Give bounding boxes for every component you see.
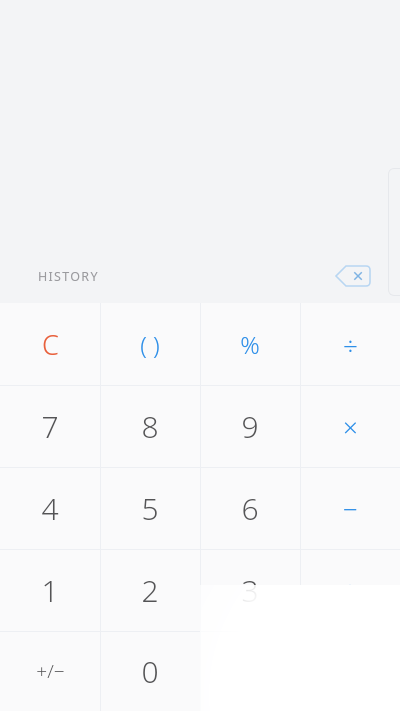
staticText: 0	[141, 651, 159, 692]
button[interactable]: 1	[0, 549, 100, 631]
button[interactable]: ×	[300, 385, 400, 467]
staticText: ( )	[140, 328, 160, 361]
button[interactable]: +	[300, 549, 400, 631]
button[interactable]: 3	[200, 549, 300, 631]
staticText: ×	[343, 409, 358, 444]
staticText: 4	[41, 488, 59, 529]
button[interactable]: 2	[100, 549, 200, 631]
button[interactable]: +/−	[0, 631, 100, 711]
button[interactable]: −	[300, 467, 400, 549]
staticText: 5	[141, 488, 159, 529]
button[interactable]: 5	[100, 467, 200, 549]
staticText: 2	[141, 570, 159, 611]
button[interactable]: 6	[200, 467, 300, 549]
button[interactable]: ( )	[100, 303, 200, 385]
button[interactable]: 4	[0, 467, 100, 549]
button[interactable]: Backspace	[332, 259, 374, 293]
button[interactable]: 7	[0, 385, 100, 467]
staticText: 6	[241, 488, 259, 529]
staticText: 3	[241, 570, 259, 611]
staticText: HISTORY	[38, 268, 99, 285]
staticText: C	[42, 326, 59, 363]
button[interactable]: 8	[100, 385, 200, 467]
button[interactable]: C	[0, 303, 100, 385]
staticText: 1	[41, 570, 59, 611]
button[interactable]: 9	[200, 385, 300, 467]
staticText: ÷	[343, 327, 358, 362]
staticText: 8	[141, 406, 159, 447]
button[interactable]: HISTORY	[22, 258, 115, 295]
staticText: 9	[241, 406, 259, 447]
staticText: %	[240, 328, 260, 361]
staticText: 7	[41, 406, 59, 447]
button[interactable]: 0	[100, 631, 200, 711]
staticText: +/−	[36, 658, 65, 684]
button[interactable]: %	[200, 303, 300, 385]
button[interactable]: ÷	[300, 303, 400, 385]
staticText: −	[343, 491, 358, 526]
